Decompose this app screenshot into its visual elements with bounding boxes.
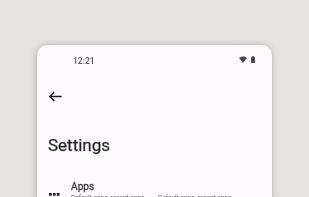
button[interactable]: Back <box>42 83 68 109</box>
staticText: Apps <box>71 181 95 193</box>
staticText: Settings <box>48 135 111 155</box>
button[interactable]: Apps <box>37 176 272 197</box>
staticText: Default apps, recent apps <box>71 194 145 197</box>
staticText: Settings <box>48 135 111 155</box>
staticText: Apps <box>71 181 95 193</box>
staticText: 12:21 <box>73 56 95 66</box>
staticText: Default apps, recent apps <box>158 194 232 197</box>
